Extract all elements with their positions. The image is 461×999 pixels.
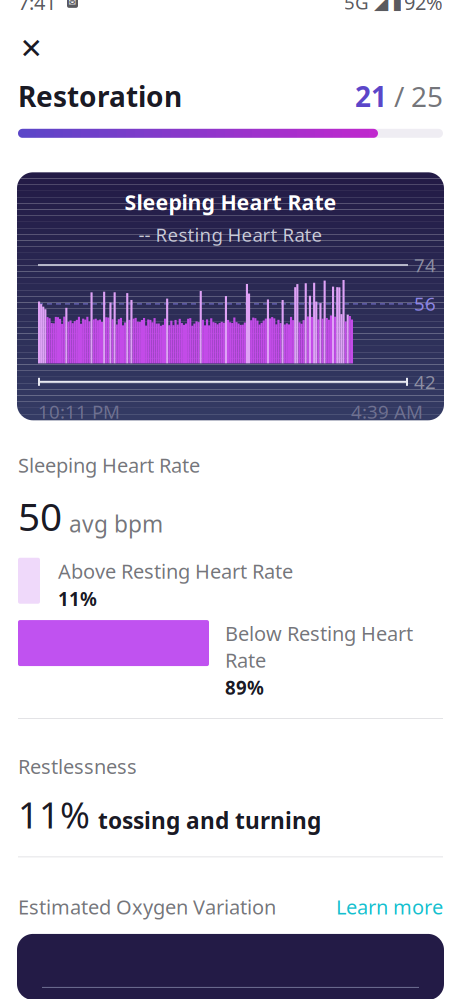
staticText: Estimated Oxygen Variation xyxy=(18,893,276,920)
staticText: 4:39 AM xyxy=(351,399,423,424)
staticText: ◢ xyxy=(374,0,388,13)
staticText: 74 xyxy=(414,253,436,277)
staticText: 7:41 xyxy=(18,0,56,16)
staticText: 10:11 PM xyxy=(38,399,120,424)
staticText: Above Resting Heart Rate xyxy=(58,558,293,584)
staticText: -- Resting Heart Rate xyxy=(138,222,322,247)
staticText: ▮ xyxy=(392,0,402,13)
staticText: Sleeping Heart Rate xyxy=(18,452,200,478)
staticText: 89% xyxy=(225,675,264,700)
staticText: Sleeping Heart Rate xyxy=(124,188,336,216)
staticText: avg bpm xyxy=(69,509,163,539)
staticText: Restoration xyxy=(18,78,182,115)
staticText: 11% xyxy=(18,791,90,838)
staticText: Restlessness xyxy=(18,753,137,780)
staticText: / 25 xyxy=(387,78,443,115)
staticText: 92% xyxy=(404,0,443,16)
staticText: 56 xyxy=(414,291,436,316)
staticText: 5G xyxy=(344,0,369,15)
staticText: tossing and turning xyxy=(98,805,321,835)
staticText: Below Resting Heart Rate xyxy=(225,620,413,673)
staticText: 21 xyxy=(355,78,387,115)
button[interactable]: Learn more xyxy=(336,893,443,920)
staticText: 42 xyxy=(414,369,436,394)
staticText: 11% xyxy=(58,586,97,611)
staticText: ✕ xyxy=(19,33,42,65)
staticText: ✉ xyxy=(68,0,76,8)
staticText: Learn more xyxy=(336,893,443,920)
button[interactable]: Close xyxy=(9,32,53,66)
staticText: 50 xyxy=(18,490,62,542)
